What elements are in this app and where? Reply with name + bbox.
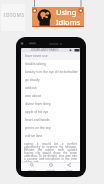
button[interactable]: Share xyxy=(61,163,77,171)
staticText: Using xyxy=(56,7,77,17)
button[interactable]: double-taking xyxy=(21,60,80,68)
button[interactable]: go cloudy xyxy=(21,76,80,84)
button[interactable]: Using xyxy=(32,7,84,27)
button[interactable]: divine from sleep xyxy=(21,100,80,108)
staticText: a drive lane xyxy=(25,134,43,138)
staticText: prince on the top xyxy=(25,126,51,130)
button[interactable]: add out xyxy=(21,84,80,92)
staticText: add out xyxy=(25,86,37,90)
staticText: IDIOMS xyxy=(4,12,25,18)
staticText: Idioms xyxy=(56,17,81,27)
staticText: have never use xyxy=(25,54,48,58)
staticText: Favorite xyxy=(46,168,56,171)
button[interactable]: Favorite xyxy=(43,163,59,171)
button[interactable]: wao about xyxy=(21,92,80,100)
button[interactable]: a drive lane xyxy=(21,132,80,140)
staticText: Search xyxy=(28,168,36,171)
staticText: saying it would be a perfect opportunity… xyxy=(24,142,77,162)
staticText: divine from sleep xyxy=(25,102,51,106)
staticText: heart and hands xyxy=(25,118,50,122)
button[interactable]: Search xyxy=(24,163,40,171)
staticText: beauty is in the eye of the beholder xyxy=(25,70,78,74)
button[interactable]: heart and hands xyxy=(21,116,80,124)
button[interactable]: have never use xyxy=(21,52,80,60)
staticText: IDIOMS AND PHRASES xyxy=(31,48,59,52)
staticText: wao about xyxy=(25,94,41,98)
staticText: Share xyxy=(66,168,73,171)
button[interactable]: apple of his eye xyxy=(21,108,80,116)
button[interactable]: beauty is in the eye of the beholder xyxy=(21,68,80,76)
staticText: double-taking xyxy=(25,62,46,66)
staticText: go cloudy xyxy=(25,78,40,82)
button[interactable]: prince on the top xyxy=(21,124,80,132)
staticText: apple of his eye xyxy=(25,110,49,114)
